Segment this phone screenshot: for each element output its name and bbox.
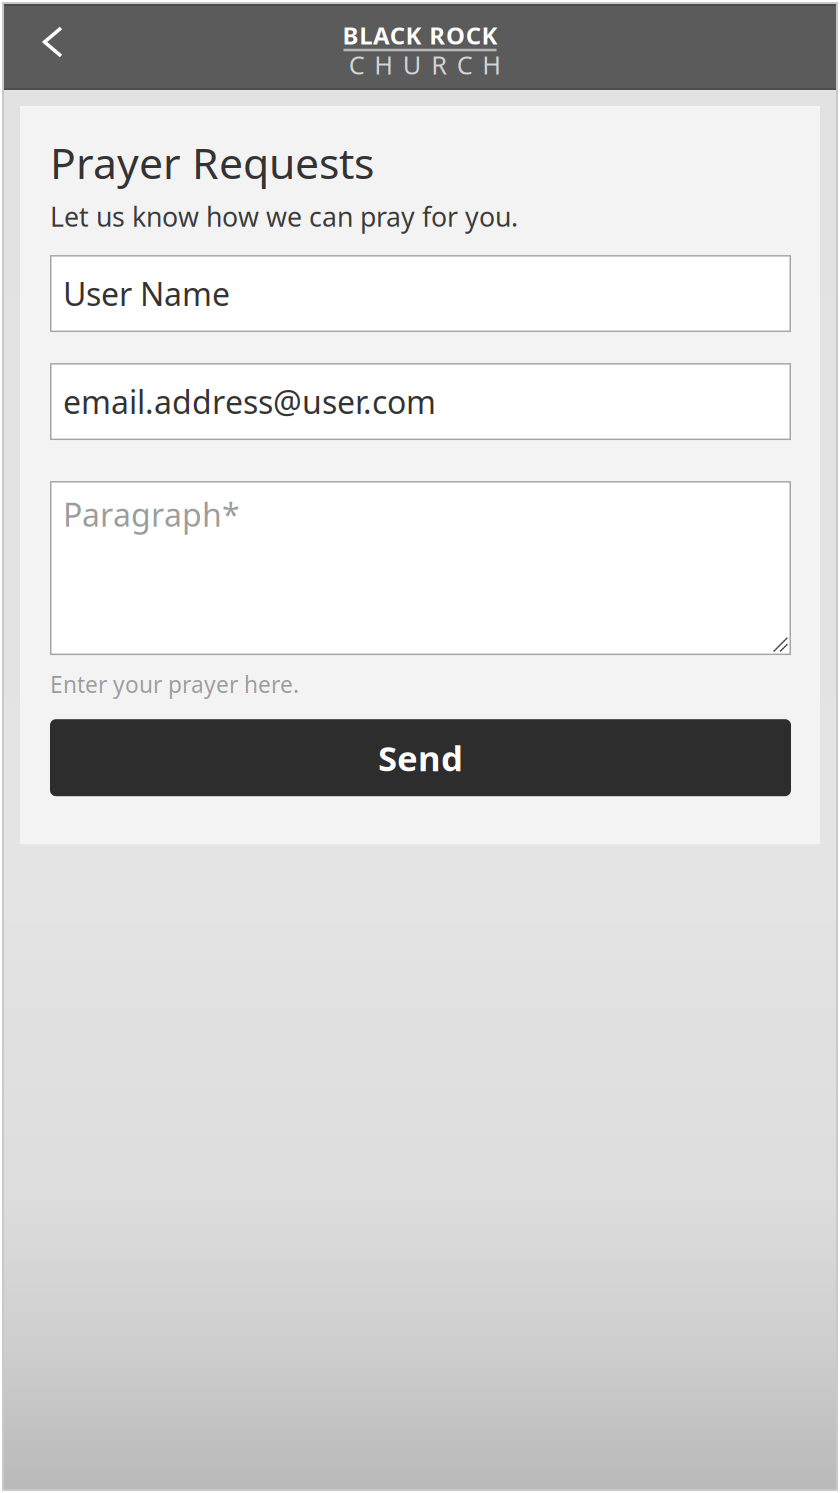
staticText: CHURCH — [349, 48, 501, 81]
staticText: Paragraph* — [63, 493, 240, 536]
staticText: Enter your prayer here. — [50, 669, 299, 699]
staticText: Prayer Requests — [50, 134, 374, 191]
staticText: Let us know how we can pray for you. — [50, 199, 518, 234]
staticText: User Name — [63, 272, 230, 315]
staticText: BLACK ROCK — [342, 19, 498, 51]
staticText: email.address@user.com — [63, 380, 436, 423]
button[interactable]: Send — [50, 719, 791, 796]
button[interactable]: Back — [4, 4, 90, 90]
staticText: Send — [378, 735, 463, 781]
